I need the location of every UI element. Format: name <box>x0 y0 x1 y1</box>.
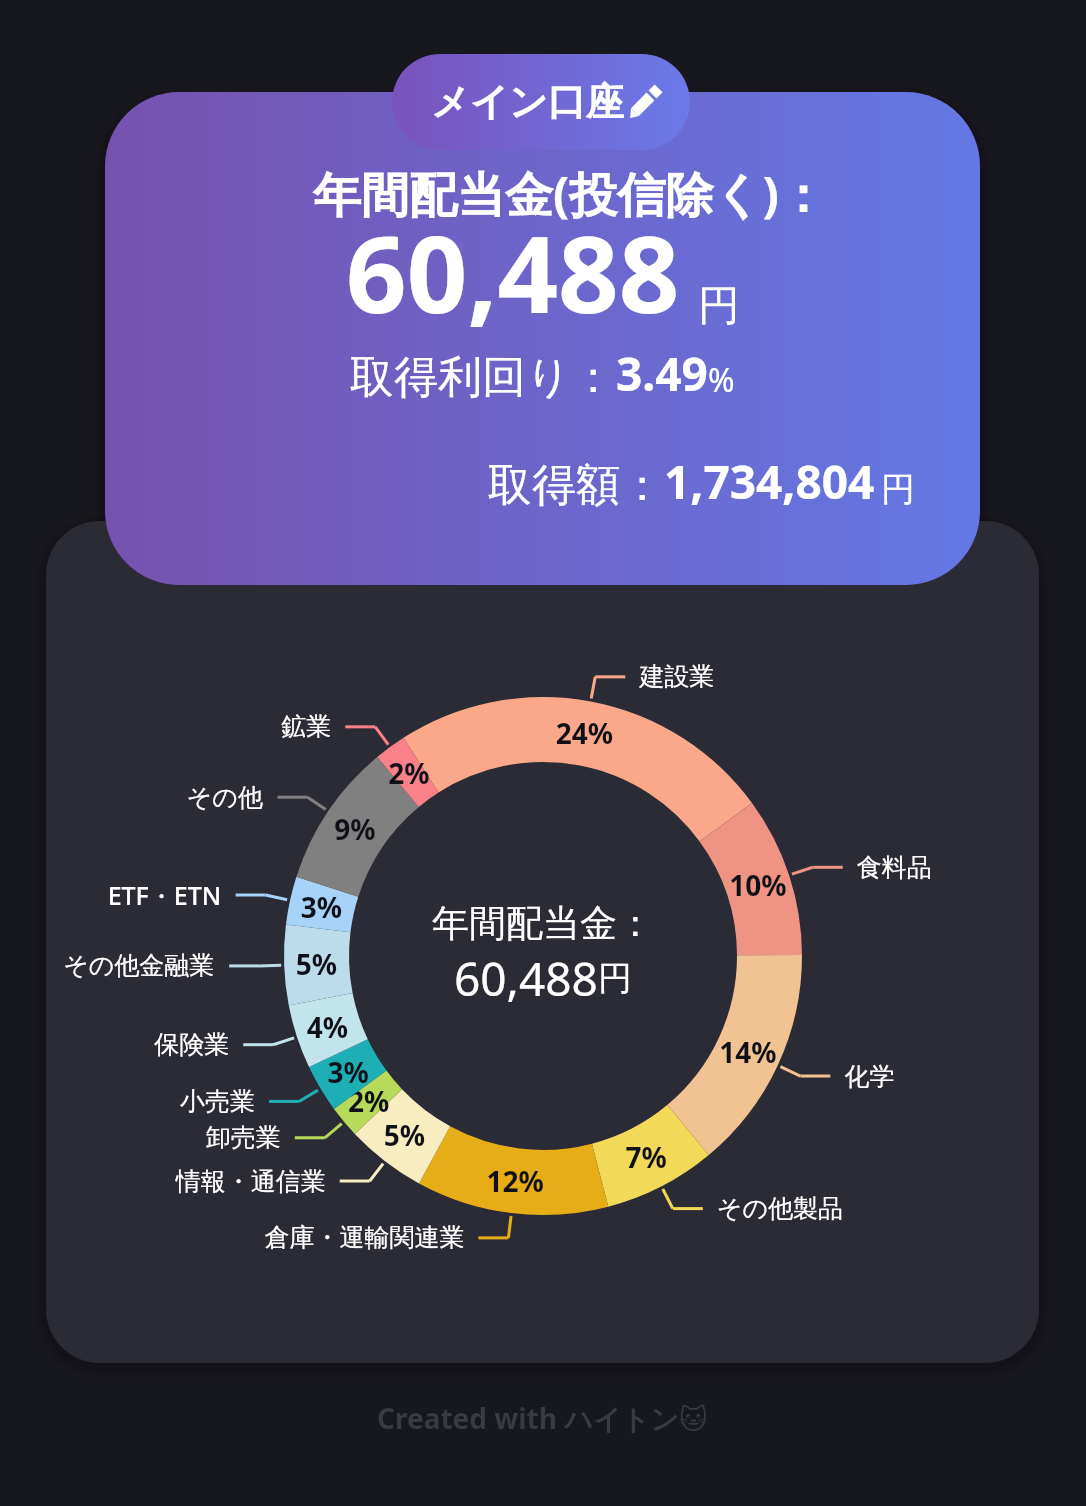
staticText: 年間配当金(投信除く)： <box>313 161 827 227</box>
staticText: 3.49 <box>616 342 708 405</box>
button[interactable]: 年間配当金(投信除く)： <box>105 92 980 585</box>
staticText: 取得利回り： <box>350 350 616 405</box>
other: Edit <box>627 84 663 120</box>
staticText: 円 <box>698 280 740 333</box>
staticText: 取得額： <box>488 458 664 513</box>
staticText: 円 <box>881 468 915 511</box>
button[interactable] <box>46 521 1039 1363</box>
staticText: 60,488 <box>346 200 680 344</box>
staticText: メイン口座 <box>431 78 624 126</box>
staticText: Created with ハイトン🐱 <box>377 1399 709 1437</box>
button[interactable]: メイン口座を編集 <box>392 54 690 150</box>
staticText: 1,734,804 <box>664 450 875 513</box>
staticText: % <box>708 358 735 402</box>
